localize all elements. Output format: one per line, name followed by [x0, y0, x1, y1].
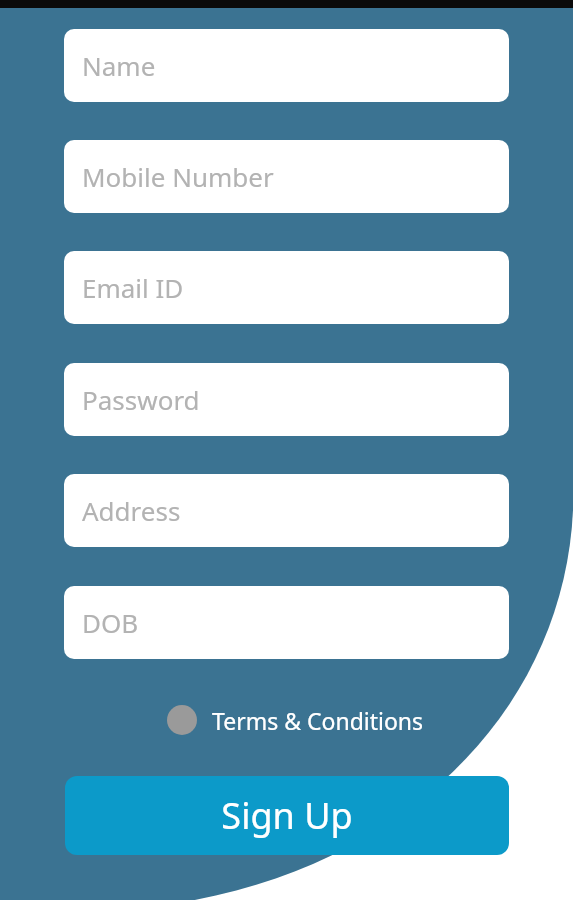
- staticText: Sign Up: [221, 791, 353, 840]
- staticText: Mobile Number: [82, 159, 274, 194]
- button[interactable]: Email ID: [64, 251, 509, 324]
- staticText: Address: [82, 493, 181, 528]
- button[interactable]: Sign Up: [65, 776, 509, 855]
- staticText: Name: [82, 48, 156, 83]
- other: Accept Terms and Conditions: [160, 698, 204, 742]
- staticText: Email ID: [82, 270, 184, 305]
- staticText: DOB: [82, 605, 139, 640]
- button[interactable]: DOB: [64, 586, 509, 659]
- button[interactable]: Mobile Number: [64, 140, 509, 213]
- button[interactable]: Password: [64, 363, 509, 436]
- button[interactable]: Name: [64, 29, 509, 102]
- button[interactable]: Accept Terms and Conditions: [160, 698, 418, 742]
- staticText: Terms & Conditions: [212, 705, 424, 736]
- staticText: Password: [82, 382, 200, 417]
- button[interactable]: Address: [64, 474, 509, 547]
